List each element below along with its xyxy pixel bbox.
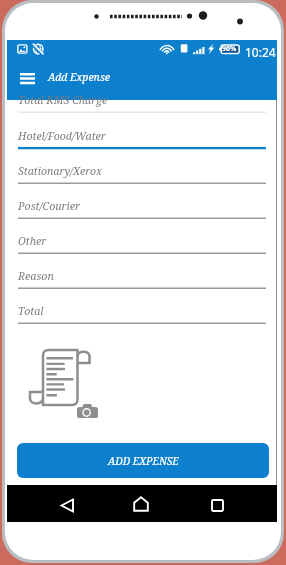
button[interactable]: Total KMS Charge bbox=[18, 83, 266, 114]
button[interactable]: Attach receipt photo bbox=[29, 344, 103, 424]
button[interactable]: Recent apps bbox=[205, 493, 229, 517]
staticText: 96% bbox=[222, 44, 237, 54]
staticText: Hotel/Food/Water bbox=[18, 129, 106, 143]
staticText: Reason bbox=[18, 269, 54, 283]
button[interactable]: Stationary/Xerox bbox=[18, 154, 266, 185]
button[interactable]: Reason bbox=[18, 259, 266, 290]
button[interactable]: Other bbox=[18, 224, 266, 255]
staticText: 10:24 bbox=[245, 44, 276, 60]
staticText: Stationary/Xerox bbox=[18, 164, 102, 178]
button[interactable]: ADD EXPENSE bbox=[17, 443, 269, 478]
button[interactable]: Post/Courier bbox=[18, 189, 266, 220]
staticText: ADD EXPENSE bbox=[108, 454, 179, 468]
button[interactable]: Hotel/Food/Water bbox=[18, 119, 266, 150]
staticText: Total bbox=[18, 304, 44, 318]
button[interactable]: Open navigation menu bbox=[17, 65, 38, 95]
button[interactable]: Home bbox=[129, 492, 153, 516]
staticText: Total KMS Charge bbox=[18, 93, 108, 107]
staticText: Post/Courier bbox=[18, 199, 80, 213]
staticText: Add Expense bbox=[48, 70, 110, 84]
staticText: Other bbox=[18, 234, 47, 248]
button[interactable]: Back bbox=[55, 493, 79, 517]
button[interactable]: Total bbox=[18, 294, 266, 325]
